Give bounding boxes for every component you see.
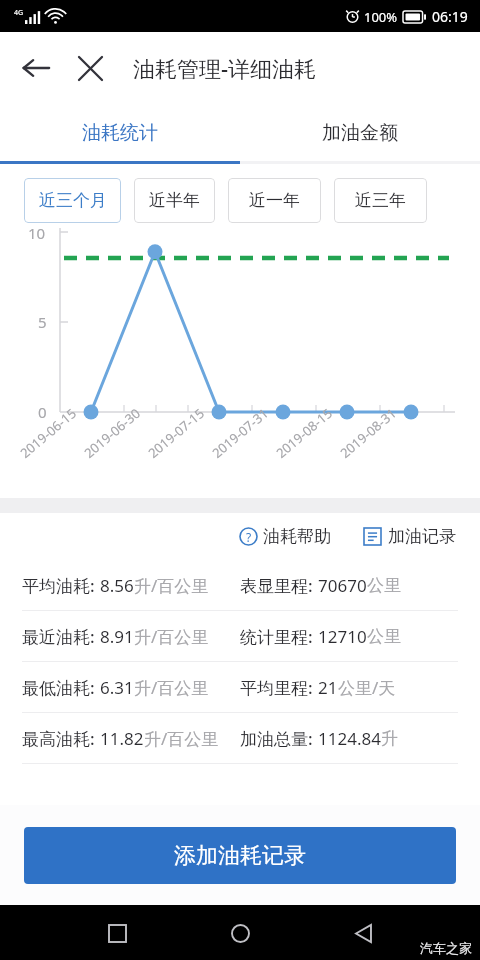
staticText: 21 [318,676,338,699]
button[interactable]: ? [235,522,335,551]
button[interactable]: 加油金额 [240,104,480,161]
staticText: 表显里程: [240,574,318,597]
button[interactable]: 油耗统计 [0,104,240,161]
button[interactable]: Back [12,44,60,92]
staticText: 近三年 [355,190,406,211]
staticText: 2019-08-15 [272,404,336,462]
staticText: ? [246,529,252,545]
staticText: 10 [28,223,46,243]
staticText: 近三个月 [39,190,107,211]
staticText: 公里 [367,626,401,647]
staticText: 2019-07-15 [144,404,208,462]
staticText: 加油记录 [388,526,456,547]
staticText: 统计里程: [240,625,318,648]
staticText: 汽车之家 [420,940,472,956]
staticText: 1124.84 [318,727,381,750]
staticText: 加油金额 [322,121,398,145]
staticText: 5 [38,312,47,332]
staticText: 8.91 [100,625,134,648]
staticText: 升 [381,728,398,749]
staticText: 11.82 [100,727,144,750]
staticText: 平均油耗: [22,574,100,597]
staticText: 2019-07-31 [208,404,272,462]
staticText: 公里 [367,575,401,596]
button[interactable]: Home [219,912,261,954]
staticText: 0 [38,402,47,422]
staticText: 升/百公里 [144,727,219,750]
staticText: 升/百公里 [134,676,209,699]
staticText: 油耗管理-详细油耗 [133,53,317,83]
button[interactable]: 近三年 [334,178,427,223]
button[interactable]: 加油记录 [359,522,460,551]
button[interactable]: 添加油耗记录 [24,827,456,884]
staticText: 06:19 [432,7,468,26]
button[interactable]: 近三个月 [24,178,121,223]
staticText: 8.56 [100,574,134,597]
staticText: 6.31 [100,676,134,699]
staticText: 100% [364,8,398,26]
button[interactable]: Recent apps [96,912,138,954]
button[interactable]: Close [68,46,112,90]
staticText: 加油总量: [240,727,318,750]
button[interactable]: 近半年 [134,178,215,223]
staticText: 2019-08-31 [336,404,400,462]
staticText: 最低油耗: [22,676,100,699]
staticText: 近半年 [149,190,200,211]
staticText: 2019-06-15 [16,404,80,462]
staticText: 升/百公里 [134,574,209,597]
staticText: 70670 [318,574,367,597]
staticText: 2019-06-30 [80,404,144,462]
staticText: 最近油耗: [22,625,100,648]
staticText: 油耗统计 [82,121,158,145]
staticText: 升/百公里 [134,625,209,648]
button[interactable]: Back [342,912,384,954]
staticText: 平均里程: [240,676,318,699]
staticText: 4G [14,8,24,18]
staticText: 油耗帮助 [263,526,331,547]
button[interactable]: 近一年 [228,178,321,223]
staticText: 添加油耗记录 [174,842,306,870]
staticText: 公里/天 [338,676,396,699]
staticText: 最高油耗: [22,727,100,750]
staticText: 近一年 [249,190,300,211]
staticText: 12710 [318,625,367,648]
